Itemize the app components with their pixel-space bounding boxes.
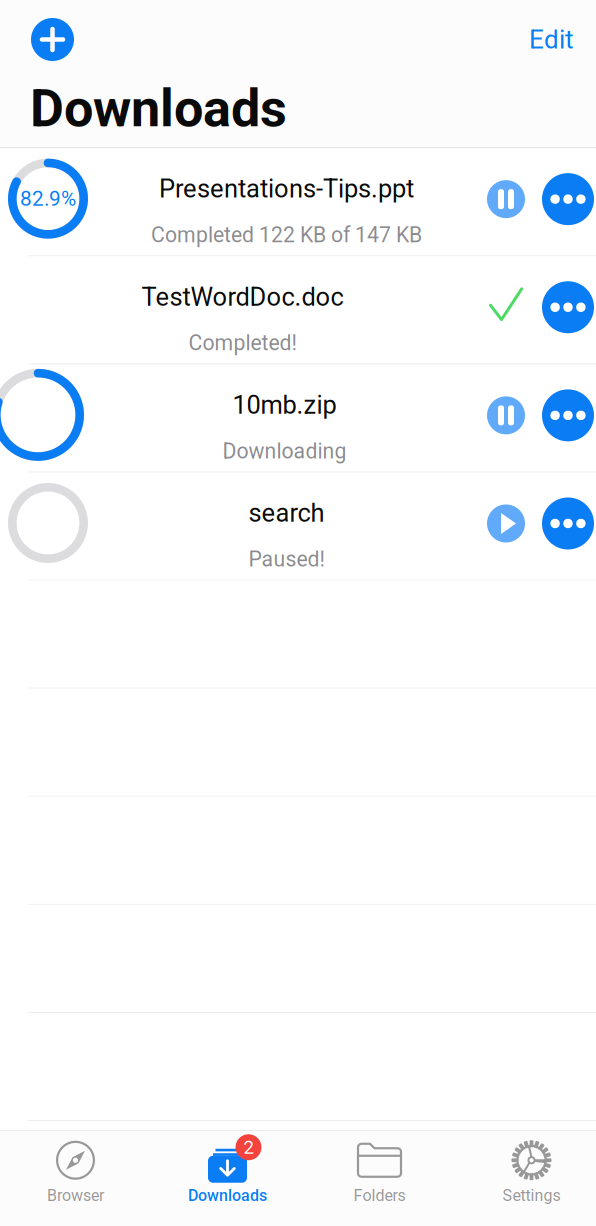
button[interactable]: Edit	[529, 24, 574, 55]
staticText: search	[248, 498, 324, 528]
staticText: Downloads	[30, 78, 287, 139]
staticText: Completed 122 KB of 147 KB	[151, 222, 422, 247]
button[interactable]: Resume	[480, 497, 532, 549]
staticText: Downloading	[222, 439, 346, 464]
button[interactable]: More options	[542, 389, 594, 441]
staticText: Completed!	[188, 331, 296, 355]
button[interactable]: Browser	[0, 1131, 151, 1226]
button[interactable]: Completed	[480, 281, 532, 333]
staticText: Folders	[353, 1186, 405, 1205]
staticText: Presentations-Tips.ppt	[159, 174, 414, 204]
button[interactable]: Pause	[480, 389, 532, 441]
button[interactable]: Add download	[31, 18, 74, 61]
staticText: Paused!	[248, 547, 324, 572]
staticText: TestWordDoc.doc	[141, 282, 343, 312]
button[interactable]: Pause	[480, 173, 532, 225]
staticText: 2	[243, 1136, 253, 1158]
staticText: Downloads	[188, 1186, 267, 1205]
button[interactable]: More options	[542, 281, 594, 333]
button[interactable]: More options	[542, 497, 594, 549]
button[interactable]: More options	[542, 173, 594, 225]
button[interactable]: Folders	[303, 1131, 455, 1226]
button[interactable]: 2	[151, 1131, 303, 1226]
staticText: Edit	[529, 24, 574, 55]
staticText: 10mb.zip	[232, 390, 336, 420]
staticText: 82.9%	[20, 186, 76, 211]
staticText: Settings	[502, 1186, 560, 1205]
staticText: Browser	[47, 1186, 104, 1205]
button[interactable]: Settings	[455, 1131, 596, 1226]
